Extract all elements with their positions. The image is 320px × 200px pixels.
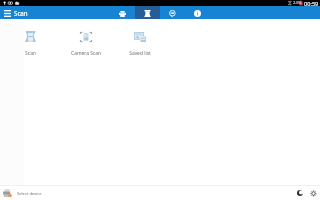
button[interactable]: Scan [2,25,58,57]
button[interactable]: Print [110,6,135,19]
staticText: Saved list [129,50,151,57]
staticText: Scan [14,9,28,17]
button[interactable]: Night mode [296,189,304,197]
button[interactable]: Brightness [309,189,317,197]
button[interactable]: Information [185,6,210,19]
button[interactable]: Refresh [160,6,185,19]
button[interactable]: Camera Scan [58,25,114,57]
button[interactable]: Open navigation drawer [0,6,14,19]
button[interactable]: Saved list [112,25,168,57]
staticText: 00:59 [304,0,319,6]
button[interactable]: Select device [0,185,320,200]
button[interactable]: Scan [135,6,160,19]
staticText: Select device [17,191,42,197]
staticText: Scan [25,50,36,57]
staticText: 24% [293,0,302,6]
staticText: Camera Scan [71,50,101,57]
